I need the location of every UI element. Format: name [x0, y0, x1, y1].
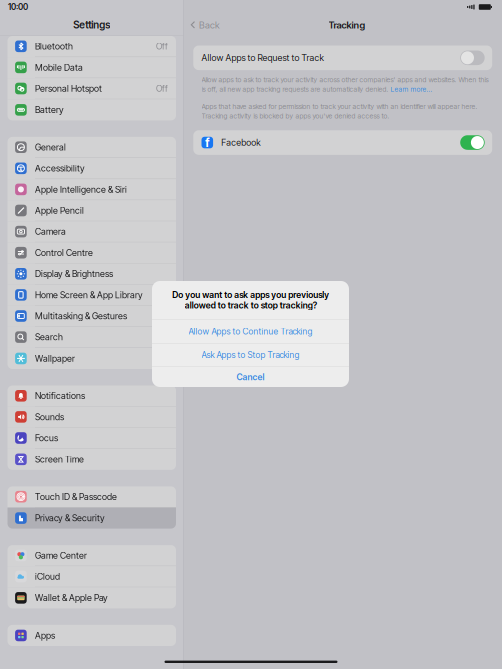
- staticText: Camera: [35, 226, 66, 237]
- staticText: Privacy & Security: [35, 513, 105, 523]
- staticText: Control Centre: [35, 247, 93, 258]
- staticText: Display & Brightness: [35, 268, 113, 279]
- staticText: Tracking: [329, 19, 366, 31]
- button[interactable]: Back: [184, 14, 226, 36]
- staticText: Learn more...: [390, 85, 432, 93]
- staticText: Allow Apps to Request to Track: [201, 52, 323, 63]
- button[interactable]: Sounds: [7, 407, 176, 428]
- button[interactable]: Wallet & Apple Pay: [7, 587, 176, 608]
- staticText: Off: [156, 41, 168, 52]
- staticText: Back: [199, 19, 220, 31]
- button[interactable]: Allow Apps to Continue Tracking: [152, 320, 349, 343]
- staticText: Bluetooth: [35, 41, 73, 52]
- button[interactable]: Search: [7, 327, 176, 348]
- button[interactable]: Focus: [7, 428, 176, 449]
- staticText: Home Screen & App Library: [35, 289, 143, 300]
- button[interactable]: Bluetooth: [7, 36, 176, 57]
- staticText: Wallet & Apple Pay: [35, 592, 108, 603]
- button[interactable]: Toggle off: [460, 50, 485, 65]
- button[interactable]: Wallpaper: [7, 348, 176, 369]
- staticText: Notifications: [35, 390, 85, 401]
- staticText: iCloud: [35, 571, 60, 582]
- staticText: Apple Pencil: [35, 205, 84, 216]
- staticText: is off, all new app tracking requests ar…: [201, 85, 390, 93]
- button[interactable]: Cancel: [152, 367, 349, 387]
- button[interactable]: Accessibility: [7, 158, 176, 179]
- staticText: Search: [35, 332, 63, 342]
- staticText: Settings: [73, 19, 110, 31]
- button[interactable]: iCloud: [7, 566, 176, 587]
- staticText: Sounds: [35, 411, 64, 422]
- button[interactable]: Multitasking & Gestures: [7, 306, 176, 327]
- button[interactable]: Display & Brightness: [7, 263, 176, 285]
- button[interactable]: Apps: [7, 625, 176, 646]
- button[interactable]: Apple Intelligence & Siri: [7, 179, 176, 200]
- staticText: Personal Hotspot: [35, 83, 102, 94]
- button[interactable]: Ask Apps to Stop Tracking: [152, 344, 349, 366]
- staticText: Mobile Data: [35, 62, 83, 73]
- button[interactable]: f: [193, 130, 492, 155]
- button[interactable]: Battery: [7, 99, 176, 120]
- button[interactable]: Game Center: [7, 545, 176, 566]
- button[interactable]: General: [7, 137, 176, 158]
- staticText: Apple Intelligence & Siri: [35, 184, 127, 195]
- button[interactable]: Notifications: [7, 385, 176, 407]
- staticText: Multitasking & Gestures: [35, 311, 127, 321]
- staticText: Ask Apps to Stop Tracking: [201, 350, 299, 360]
- staticText: 10:00: [8, 2, 28, 12]
- staticText: Apps: [35, 630, 55, 641]
- button[interactable]: Touch ID & Passcode: [7, 486, 176, 507]
- button[interactable]: Personal Hotspot: [7, 78, 176, 99]
- staticText: f: [205, 135, 209, 150]
- staticText: Allow Apps to Continue Tracking: [188, 326, 312, 337]
- staticText: Do you want to ask apps you previously a…: [172, 289, 329, 310]
- staticText: Cancel: [236, 372, 264, 382]
- staticText: Battery: [35, 104, 64, 115]
- button[interactable]: Mobile Data: [7, 57, 176, 78]
- staticText: Screen Time: [35, 454, 84, 465]
- staticText: Touch ID & Passcode: [35, 491, 117, 502]
- staticText: Apps that have asked for permission to t…: [201, 102, 477, 111]
- button[interactable]: Screen Time: [7, 449, 176, 470]
- button[interactable]: Toggle on: [460, 135, 485, 150]
- button[interactable]: Privacy & Security: [7, 507, 176, 529]
- staticText: Game Center: [35, 550, 87, 561]
- staticText: Focus: [35, 433, 58, 443]
- staticText: General: [35, 142, 66, 153]
- button[interactable]: Apple Pencil: [7, 200, 176, 221]
- button[interactable]: Control Centre: [7, 242, 176, 263]
- staticText: Off: [156, 83, 168, 94]
- staticText: Wallpaper: [35, 353, 75, 364]
- staticText: Allow apps to ask to track your activity…: [201, 76, 488, 84]
- staticText: Tracking activity is blocked by apps you…: [201, 112, 389, 120]
- button[interactable]: Camera: [7, 221, 176, 242]
- button[interactable]: Home Screen & App Library: [7, 285, 176, 306]
- button[interactable]: Learn more...: [390, 85, 432, 93]
- staticText: Accessibility: [35, 163, 85, 174]
- staticText: Facebook: [221, 137, 260, 148]
